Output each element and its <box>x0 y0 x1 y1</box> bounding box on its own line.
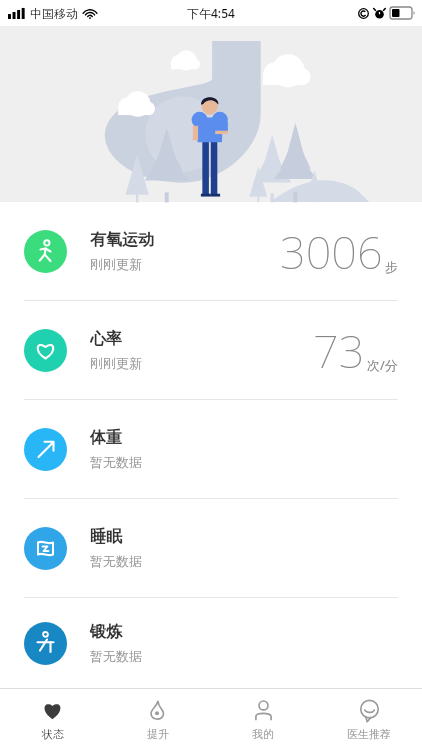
staticText: 有氧运动 <box>90 230 154 250</box>
staticText: 暂无数据 <box>90 648 142 664</box>
staticText: 睡眠 <box>90 527 122 547</box>
staticText: 提升 <box>147 727 169 741</box>
staticText: 状态 <box>42 727 64 741</box>
button[interactable]: 我的 <box>210 689 316 750</box>
staticText: 刚刚更新 <box>90 355 142 371</box>
button[interactable]: 锻炼 <box>0 598 422 688</box>
button[interactable]: 有氧运动 <box>0 202 422 300</box>
staticText: 体重 <box>90 428 122 448</box>
staticText: 暂无数据 <box>90 553 142 569</box>
button[interactable]: 心率 <box>0 301 422 399</box>
button[interactable]: 医生推荐 <box>316 689 422 750</box>
button[interactable]: 体重 <box>0 400 422 498</box>
button[interactable]: 提升 <box>105 689 210 750</box>
staticText: 下午4:54 <box>187 5 235 21</box>
button[interactable]: 睡眠 <box>0 499 422 597</box>
staticText: 73 <box>313 320 365 381</box>
staticText: 心率 <box>90 329 122 349</box>
button[interactable]: 状态 <box>0 689 105 750</box>
staticText: 次/分 <box>367 356 398 374</box>
staticText: 中国移动 <box>30 6 78 21</box>
staticText: 步 <box>385 259 398 275</box>
staticText: 暂无数据 <box>90 454 142 470</box>
staticText: 刚刚更新 <box>90 256 142 272</box>
staticText: 3006 <box>280 221 383 282</box>
staticText: 医生推荐 <box>347 727 391 741</box>
staticText: 我的 <box>252 727 274 741</box>
staticText: 锻炼 <box>90 622 122 642</box>
